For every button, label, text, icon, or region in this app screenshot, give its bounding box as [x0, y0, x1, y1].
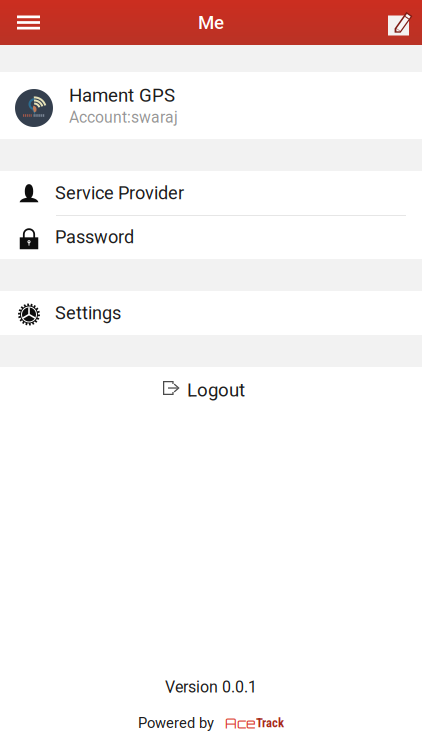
- staticText: Hament GPS: [69, 84, 175, 106]
- staticText: Me: [198, 12, 224, 33]
- staticText: Version 0.0.1: [165, 678, 257, 696]
- button[interactable]: Edit profile: [378, 0, 422, 45]
- button[interactable]: Password: [0, 215, 422, 259]
- button[interactable]: Logout: [0, 367, 422, 413]
- staticText: Password: [55, 226, 134, 248]
- button[interactable]: Settings: [0, 291, 422, 335]
- staticText: Track: [256, 716, 284, 730]
- button[interactable]: Service Provider: [0, 171, 422, 215]
- button[interactable]: Hament GPS: [0, 72, 422, 139]
- staticText: Logout: [187, 379, 245, 401]
- staticText: Ace: [225, 714, 256, 732]
- staticText: Account:swaraj: [69, 108, 178, 127]
- staticText: Service Provider: [55, 182, 184, 204]
- button[interactable]: Menu: [0, 0, 57, 45]
- staticText: Powered by: [138, 714, 214, 732]
- staticText: Settings: [55, 302, 121, 324]
